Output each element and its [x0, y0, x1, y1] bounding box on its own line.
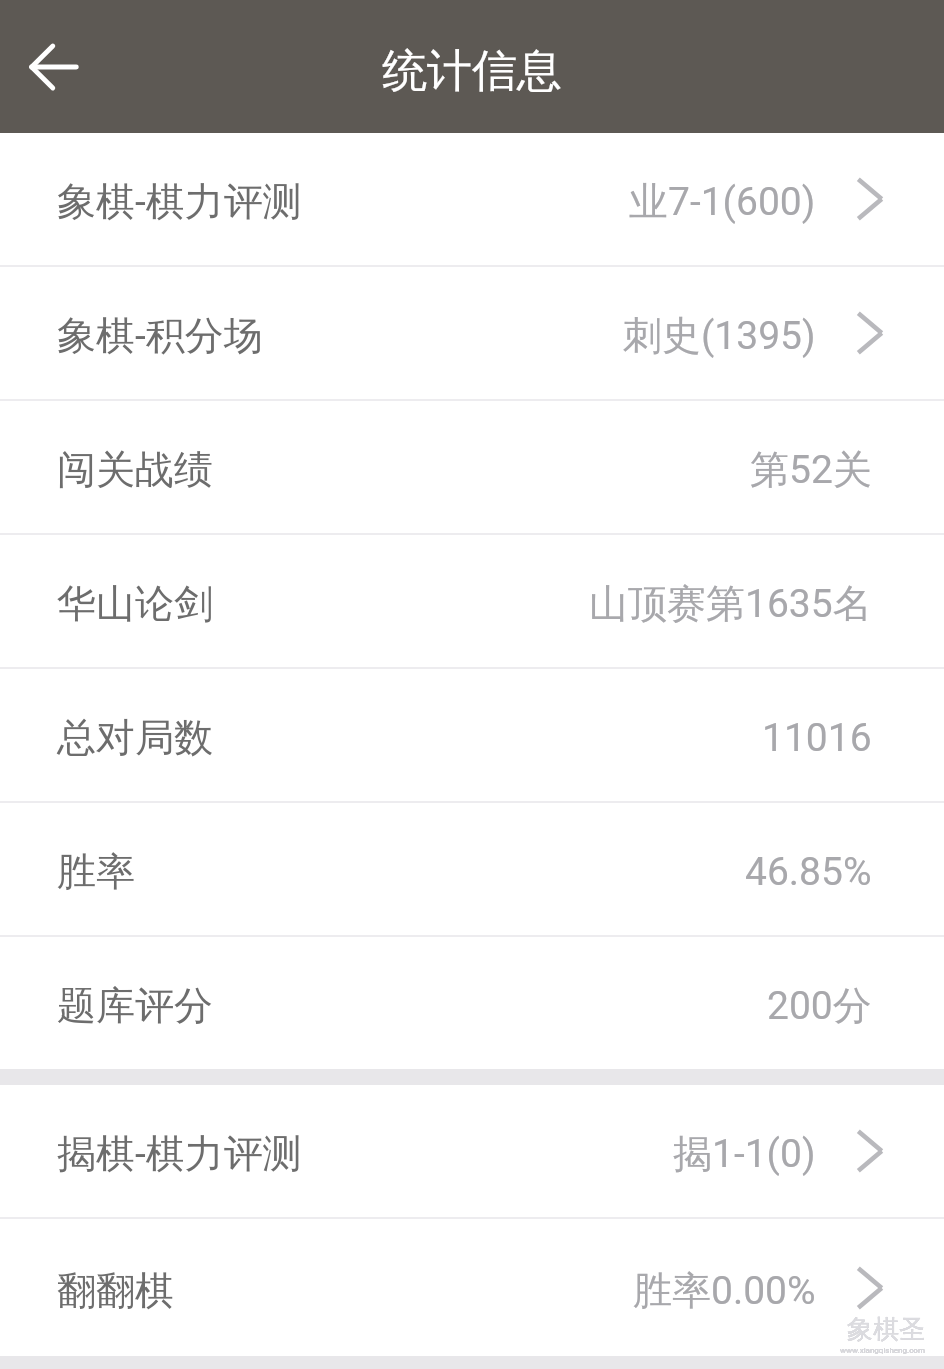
staticText: 揭棋-棋力评测 [57, 1129, 302, 1178]
button[interactable]: 胜率 [0, 803, 944, 935]
staticText: 象棋-棋力评测 [57, 177, 302, 226]
staticText: 山顶赛第1635名 [589, 579, 872, 628]
staticText: 象棋圣 [847, 1313, 925, 1346]
button[interactable]: 象棋-棋力评测 [0, 133, 944, 265]
button[interactable]: 题库评分 [0, 937, 944, 1069]
button[interactable]: Back [10, 23, 98, 111]
staticText: 翻翻棋 [57, 1266, 174, 1315]
staticText: 象棋圣 [847, 1313, 925, 1346]
button[interactable]: 闯关战绩 [0, 401, 944, 533]
button[interactable]: 总对局数 [0, 669, 944, 801]
staticText: 刺史(1395) [623, 311, 816, 360]
button[interactable]: 翻翻棋 [0, 1219, 944, 1356]
staticText: 华山论剑 [57, 579, 213, 628]
staticText: 象棋-积分场 [57, 311, 263, 360]
staticText: 胜率 [57, 847, 135, 896]
staticText: 统计信息 [382, 43, 562, 100]
staticText: www.xiangqisheng.com [840, 1346, 925, 1355]
staticText: 46.85% [745, 849, 872, 895]
staticText: 总对局数 [57, 713, 213, 762]
button[interactable]: 华山论剑 [0, 535, 944, 667]
button[interactable]: 象棋-积分场 [0, 267, 944, 399]
staticText: 揭1-1(0) [673, 1129, 816, 1178]
staticText: 闯关战绩 [57, 445, 213, 494]
staticText: 胜率0.00% [633, 1266, 816, 1315]
staticText: 题库评分 [57, 981, 213, 1030]
button[interactable]: 揭棋-棋力评测 [0, 1085, 944, 1217]
staticText: 业7-1(600) [629, 177, 816, 226]
staticText: www.xiangqisheng.com [840, 1346, 925, 1355]
staticText: 200分 [767, 981, 872, 1030]
staticText: 第52关 [750, 445, 872, 494]
staticText: 11016 [762, 715, 872, 761]
